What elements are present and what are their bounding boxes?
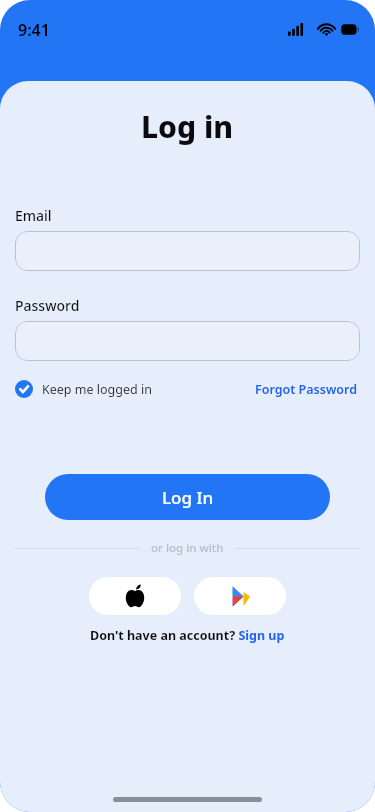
staticText: Forgot Password	[255, 381, 358, 398]
staticText: or log in with	[151, 540, 224, 556]
button[interactable]: Keep me logged in	[15, 380, 152, 398]
button[interactable]: Log in with Google Play	[194, 577, 286, 615]
button[interactable]: Log in with Apple	[89, 577, 181, 615]
staticText: Keep me logged in	[42, 381, 152, 398]
staticText: Log In	[162, 486, 214, 509]
staticText: Password	[15, 296, 80, 315]
button[interactable]: Forgot Password	[255, 381, 358, 398]
button[interactable]: Log In	[45, 474, 330, 520]
button[interactable]: Don't have an account? Sign up	[90, 627, 285, 644]
button[interactable]	[15, 231, 360, 271]
staticText: Log in	[141, 106, 234, 147]
staticText: Don't have an account? Sign up	[90, 627, 285, 644]
staticText: Email	[15, 206, 52, 225]
staticText: 9:41	[18, 19, 50, 41]
button[interactable]	[15, 321, 360, 361]
